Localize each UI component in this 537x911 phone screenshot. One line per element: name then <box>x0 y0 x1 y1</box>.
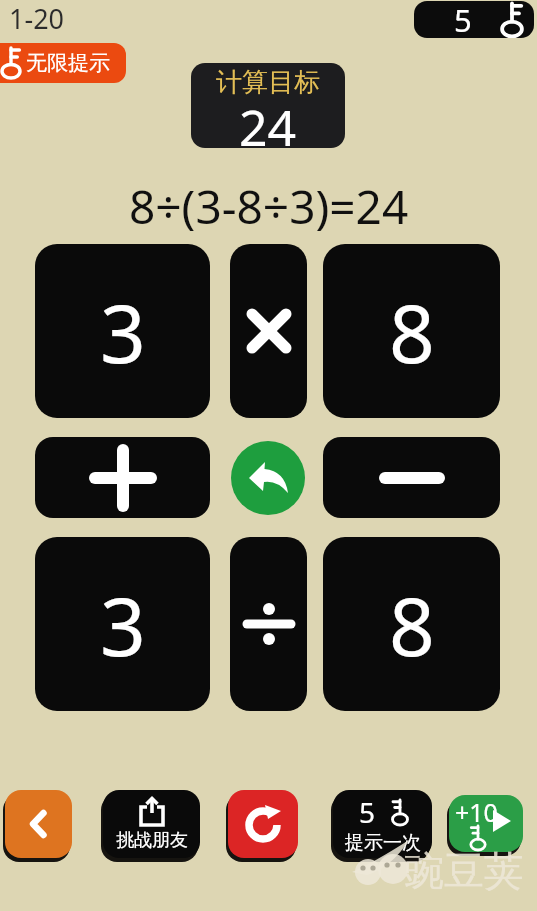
button[interactable]: 无限提示 <box>0 43 126 83</box>
staticText: 8÷(3-8÷3)=24 <box>129 175 409 238</box>
button[interactable]: 8 <box>323 537 500 711</box>
button[interactable]: 3 <box>35 537 210 711</box>
staticText: 豌豆荚 <box>404 846 524 896</box>
button[interactable] <box>230 244 307 418</box>
button[interactable]: 5 <box>414 1 534 38</box>
staticText: 24 <box>239 93 297 148</box>
button[interactable] <box>230 537 307 711</box>
staticText: 8 <box>389 570 435 679</box>
button[interactable] <box>231 441 305 515</box>
staticText: 1-20 <box>9 0 65 37</box>
staticText: 挑战朋友 <box>116 829 188 852</box>
staticText: 3 <box>100 570 146 679</box>
button[interactable] <box>323 437 500 518</box>
staticText: 计算目标 <box>216 66 320 99</box>
button[interactable] <box>228 790 298 858</box>
staticText: 无限提示 <box>26 50 110 76</box>
staticText: 3 <box>100 277 146 386</box>
staticText: 提示一次 <box>345 831 421 855</box>
button[interactable] <box>35 437 210 518</box>
staticText: 5 <box>454 1 472 36</box>
button[interactable]: +10 <box>449 795 523 852</box>
staticText: 5 <box>359 793 376 831</box>
button[interactable]: 3 <box>35 244 210 418</box>
button[interactable]: 8 <box>323 244 500 418</box>
button[interactable]: 挑战朋友 <box>103 790 200 858</box>
staticText: +10 <box>455 795 498 829</box>
button[interactable] <box>5 790 72 858</box>
staticText: 8 <box>389 277 435 386</box>
button[interactable]: 5 <box>333 790 432 858</box>
